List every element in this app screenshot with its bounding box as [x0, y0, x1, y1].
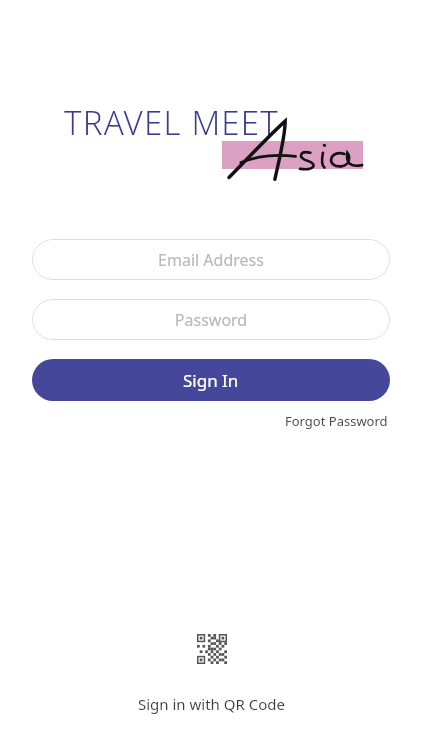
button[interactable]: Sign in with QR Code: [134, 630, 289, 718]
button[interactable]: Password: [32, 299, 390, 340]
button[interactable]: Sign In: [32, 359, 390, 401]
staticText: Sign in with QR Code: [138, 694, 285, 714]
staticText: Forgot Password: [285, 412, 388, 430]
button[interactable]: Email Address: [32, 239, 390, 280]
staticText: Email Address: [32, 249, 390, 271]
staticText: TRAVEL MEET: [64, 100, 279, 145]
staticText: Sign In: [183, 369, 239, 392]
staticText: Password: [32, 309, 390, 331]
button[interactable]: Forgot Password: [283, 410, 390, 432]
